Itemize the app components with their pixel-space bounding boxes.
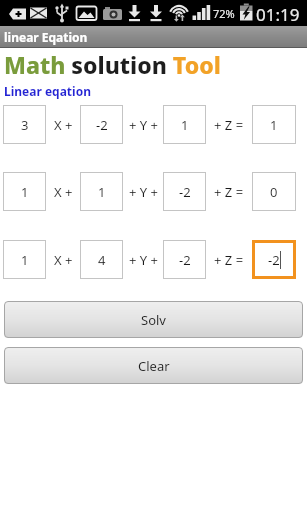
staticText: + Z = [214,116,244,134]
staticText: Clear [138,357,170,375]
staticText: -2 [179,183,191,201]
staticText: + Z = [214,183,244,201]
staticText: linear Eqation [4,29,88,45]
staticText: Linear eqation [4,83,91,99]
button[interactable]: Solv [4,301,303,338]
button[interactable]: 1 [252,105,296,144]
button[interactable]: 1 [3,172,46,211]
staticText: + Y + [129,183,158,201]
staticText: + Y + [129,251,158,269]
staticText: 4 [98,251,106,269]
button[interactable]: Clear [4,347,303,384]
staticText: -2 [96,116,108,134]
staticText: 1 [270,116,278,134]
button[interactable]: -2 [80,105,123,144]
staticText: -2 [179,251,191,269]
staticText: + Z = [214,251,244,269]
button[interactable]: 4 [80,240,123,279]
staticText: + Y + [129,116,158,134]
staticText: 1 [181,116,189,134]
button[interactable]: 0 [252,172,296,211]
button[interactable]: -2 [163,172,206,211]
staticText: -2 [268,251,280,269]
staticText: Math solution Tool [4,49,221,80]
button[interactable]: 3 [3,105,46,144]
staticText: 1 [21,183,29,201]
staticText: 0 [270,183,278,201]
staticText: X + [54,116,73,134]
staticText: Solv [141,311,166,329]
button[interactable]: 1 [3,240,46,279]
button[interactable]: -2 [163,240,206,279]
staticText: 72% [213,6,235,21]
staticText: X + [54,183,73,201]
staticText: 1 [21,251,29,269]
staticText: 1 [98,183,106,201]
staticText: 3 [21,116,29,134]
button[interactable]: 1 [163,105,206,144]
button[interactable]: -2 [252,240,296,279]
staticText: X + [54,251,73,269]
staticText: 01:19 [256,3,300,26]
button[interactable]: 1 [80,172,123,211]
